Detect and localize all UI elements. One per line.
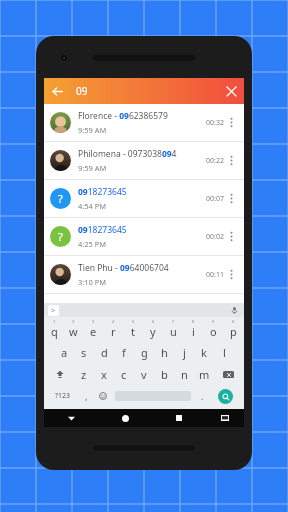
staticText: 4:54 PM bbox=[78, 201, 107, 211]
button[interactable]: 0 bbox=[223, 317, 243, 341]
button[interactable]: g bbox=[134, 341, 154, 363]
staticText: d bbox=[101, 345, 108, 360]
staticText: y bbox=[150, 324, 156, 339]
staticText: 6 bbox=[152, 319, 155, 324]
staticText: n bbox=[181, 367, 188, 382]
staticText: j bbox=[183, 345, 186, 360]
button[interactable]: 7 bbox=[163, 317, 183, 341]
button[interactable]: 2 bbox=[64, 317, 83, 341]
button[interactable]: 1 bbox=[45, 317, 64, 341]
staticText: 00:07 bbox=[206, 194, 224, 204]
button[interactable]: More options bbox=[224, 256, 238, 293]
button[interactable]: More options bbox=[224, 142, 238, 179]
button[interactable]: Philomena - 0973038094 bbox=[44, 142, 244, 179]
button[interactable]: b bbox=[154, 363, 174, 385]
staticText: 4 bbox=[112, 319, 115, 324]
staticText: Philomena - 0973038094 bbox=[78, 148, 177, 160]
staticText: i bbox=[192, 324, 195, 339]
button[interactable]: x bbox=[94, 363, 114, 385]
staticText: p bbox=[230, 324, 237, 339]
staticText: ?123 bbox=[55, 391, 71, 401]
button[interactable]: ?123 bbox=[47, 385, 78, 407]
button[interactable]: s bbox=[74, 341, 94, 363]
button[interactable]: j bbox=[174, 341, 194, 363]
staticText: 00:11 bbox=[206, 270, 224, 280]
button[interactable]: c bbox=[114, 363, 134, 385]
button[interactable]: Search bbox=[218, 389, 233, 404]
button[interactable]: z bbox=[74, 363, 94, 385]
staticText: ? bbox=[58, 191, 63, 206]
staticText: u bbox=[170, 324, 177, 339]
button[interactable]: 6 bbox=[143, 317, 163, 341]
staticText: > bbox=[51, 306, 56, 316]
staticText: 3 bbox=[92, 319, 95, 324]
button[interactable]: Back bbox=[44, 78, 70, 104]
staticText: x bbox=[101, 367, 107, 382]
button[interactable]: l bbox=[214, 341, 234, 363]
button[interactable]: Voice input bbox=[228, 304, 240, 316]
button[interactable]: Backspace bbox=[214, 363, 242, 385]
button[interactable]: ? bbox=[44, 218, 244, 255]
button[interactable]: Shift bbox=[46, 363, 74, 385]
button[interactable]: More suggestions bbox=[48, 305, 59, 316]
button[interactable]: 5 bbox=[123, 317, 143, 341]
button[interactable]: Switch keyboard bbox=[206, 409, 244, 427]
staticText: q bbox=[51, 324, 58, 339]
button[interactable]: 3 bbox=[83, 317, 103, 341]
button[interactable]: More options bbox=[224, 218, 238, 255]
staticText: 8 bbox=[192, 319, 195, 324]
staticText: 0918273645 bbox=[78, 224, 127, 236]
staticText: 9 bbox=[212, 319, 215, 324]
staticText: 4:25 PM bbox=[78, 239, 107, 249]
staticText: v bbox=[141, 367, 147, 382]
staticText: 1 bbox=[53, 319, 56, 324]
staticText: w bbox=[69, 324, 78, 339]
button[interactable]: Period bbox=[194, 385, 210, 407]
staticText: f bbox=[122, 345, 126, 360]
button[interactable]: a bbox=[54, 341, 74, 363]
staticText: ? bbox=[58, 229, 63, 244]
staticText: 5 bbox=[132, 319, 135, 324]
button[interactable]: m bbox=[194, 363, 214, 385]
staticText: 09 bbox=[76, 84, 218, 98]
button[interactable]: Recents bbox=[152, 409, 206, 427]
button[interactable]: More options bbox=[224, 180, 238, 217]
staticText: 9:59 AM bbox=[78, 125, 107, 135]
staticText: 0918273645 bbox=[78, 186, 127, 198]
button[interactable]: n bbox=[174, 363, 194, 385]
staticText: k bbox=[201, 345, 207, 360]
button[interactable]: Tien Phu - 0964006704 bbox=[44, 256, 244, 293]
button[interactable]: Home bbox=[98, 409, 152, 427]
staticText: c bbox=[121, 367, 127, 382]
staticText: a bbox=[61, 345, 68, 360]
button[interactable]: f bbox=[114, 341, 134, 363]
button[interactable]: Florence - 0962386579 bbox=[44, 104, 244, 141]
button[interactable]: ? bbox=[44, 180, 244, 217]
staticText: l bbox=[223, 345, 226, 360]
button[interactable]: h bbox=[154, 341, 174, 363]
button[interactable]: More options bbox=[224, 104, 238, 141]
button[interactable]: v bbox=[134, 363, 154, 385]
button[interactable]: 8 bbox=[183, 317, 203, 341]
button[interactable]: Emoji bbox=[94, 385, 112, 407]
button[interactable]: Clear bbox=[218, 78, 244, 104]
button[interactable]: d bbox=[94, 341, 114, 363]
staticText: 00:32 bbox=[206, 118, 224, 128]
staticText: t bbox=[131, 324, 135, 339]
staticText: b bbox=[161, 367, 168, 382]
button[interactable]: 4 bbox=[103, 317, 123, 341]
staticText: h bbox=[161, 345, 168, 360]
button[interactable]: Comma bbox=[78, 385, 94, 407]
staticText: 00:02 bbox=[206, 232, 224, 242]
staticText: 9:59 AM bbox=[78, 163, 107, 173]
staticText: e bbox=[90, 324, 97, 339]
staticText: 3:10 PM bbox=[78, 277, 107, 287]
button[interactable]: Hide keyboard bbox=[44, 409, 98, 427]
staticText: Florence - 0962386579 bbox=[78, 110, 168, 122]
button[interactable]: k bbox=[194, 341, 214, 363]
button[interactable]: 9 bbox=[203, 317, 223, 341]
staticText: m bbox=[199, 367, 210, 382]
staticText: 7 bbox=[172, 319, 175, 324]
staticText: g bbox=[141, 345, 148, 360]
